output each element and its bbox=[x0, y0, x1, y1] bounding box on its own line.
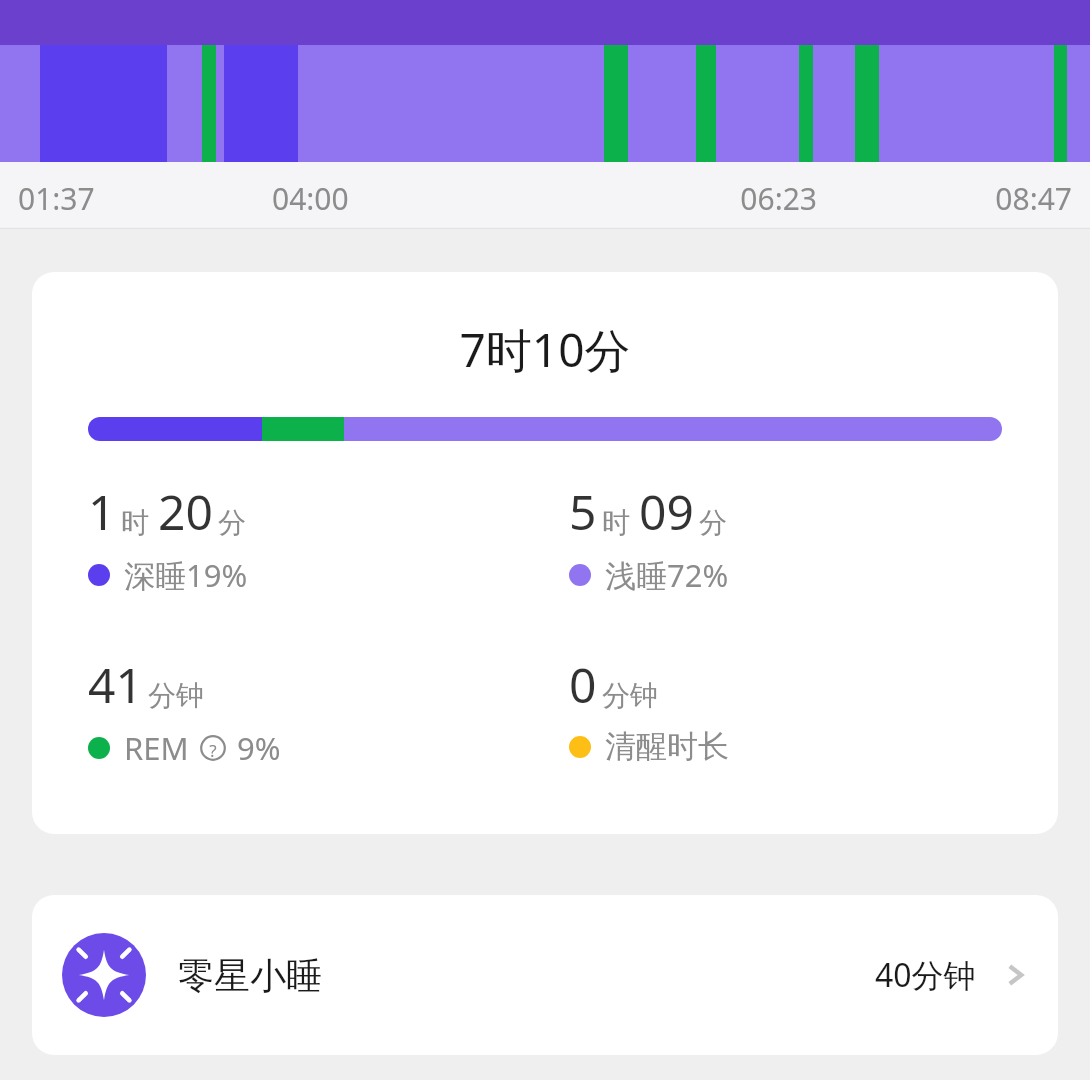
staticText: 浅睡72% bbox=[605, 554, 729, 596]
staticText: 时 bbox=[602, 505, 630, 540]
staticText: 分 bbox=[699, 505, 727, 540]
staticText: 40分钟 bbox=[875, 953, 976, 997]
button[interactable]: Nap bbox=[32, 895, 1058, 1055]
staticText: 9% bbox=[237, 727, 281, 769]
staticText: ? bbox=[200, 739, 226, 761]
staticText: 04:00 bbox=[272, 178, 544, 219]
staticText: 1 bbox=[88, 479, 116, 544]
staticText: 06:23 bbox=[544, 178, 817, 219]
staticText: 分钟 bbox=[148, 678, 204, 713]
staticText: 零星小睡 bbox=[178, 953, 322, 998]
staticText: 01:37 bbox=[18, 178, 272, 219]
staticText: 分钟 bbox=[602, 678, 658, 713]
staticText: REM bbox=[124, 727, 189, 769]
staticText: 深睡19% bbox=[124, 554, 248, 596]
staticText: 08:47 bbox=[817, 178, 1072, 219]
staticText: 0 bbox=[569, 652, 597, 717]
staticText: 时 bbox=[121, 505, 149, 540]
button[interactable]: REM help bbox=[200, 735, 226, 761]
staticText: 41 bbox=[88, 652, 143, 717]
staticText: 09 bbox=[639, 479, 694, 544]
staticText: 清醒时长 bbox=[605, 727, 729, 766]
staticText: 5 bbox=[569, 479, 597, 544]
staticText: 分 bbox=[218, 505, 246, 540]
staticText: 20 bbox=[158, 479, 213, 544]
staticText: 7时10分 bbox=[32, 318, 1058, 381]
other: Nap bbox=[62, 933, 146, 1017]
